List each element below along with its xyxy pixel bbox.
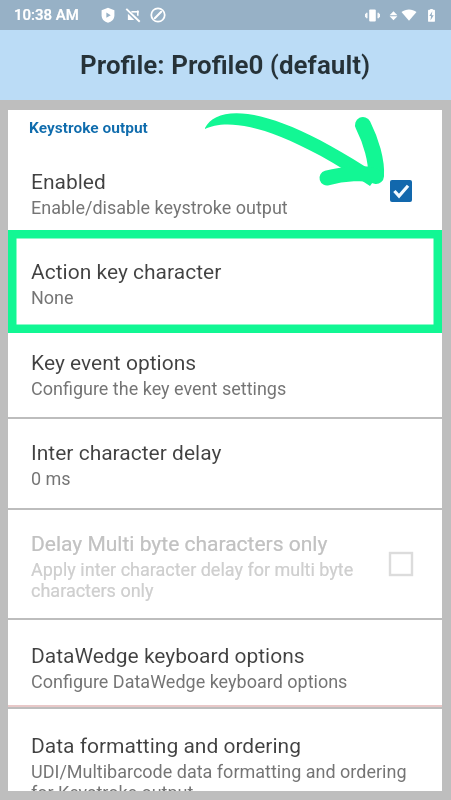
button[interactable]: Key event options: [8, 333, 442, 417]
staticText: Keystroke output: [29, 119, 148, 137]
staticText: 10:38 AM: [14, 6, 79, 24]
button[interactable]: Data formatting and ordering: [8, 709, 442, 791]
staticText: Enabled: [31, 170, 106, 195]
staticText: Enable/disable keystroke output: [31, 197, 288, 218]
staticText: Apply inter character delay for multi by…: [31, 559, 356, 601]
staticText: Data formatting and ordering: [31, 734, 301, 759]
staticText: Action key character: [31, 260, 222, 285]
staticText: DataWedge keyboard options: [31, 644, 305, 669]
staticText: UDI/Multibarcode data formatting and ord…: [31, 761, 421, 800]
staticText: 0 ms: [31, 468, 71, 489]
staticText: Inter character delay: [31, 441, 222, 466]
button[interactable]: Delay multi byte characters checkbox, un…: [378, 541, 424, 587]
staticText: Configure DataWedge keyboard options: [31, 671, 348, 692]
button[interactable]: Enabled: [8, 152, 442, 230]
button[interactable]: Enabled checkbox, checked: [378, 168, 424, 214]
staticText: Profile: Profile0 (default): [80, 50, 371, 80]
staticText: Configure the key event settings: [31, 378, 287, 399]
button[interactable]: DataWedge keyboard options: [8, 620, 442, 705]
staticText: None: [31, 287, 74, 308]
staticText: Key event options: [31, 351, 197, 376]
button[interactable]: Delay Multi byte characters only: [8, 510, 442, 618]
button[interactable]: Action key character: [8, 230, 442, 333]
button[interactable]: Inter character delay: [8, 419, 442, 508]
staticText: Delay Multi byte characters only: [31, 532, 328, 557]
